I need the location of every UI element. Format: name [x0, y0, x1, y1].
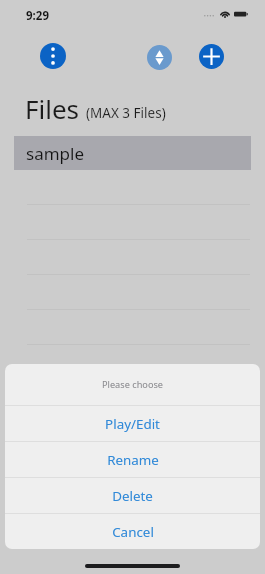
staticText: Files	[25, 91, 80, 126]
staticText: sample	[26, 142, 85, 165]
staticText: (MAX 3 Files)	[86, 104, 166, 122]
button[interactable]: Sort	[147, 45, 172, 70]
button[interactable]: Add file	[199, 44, 224, 69]
button[interactable]: Rename	[5, 442, 260, 477]
button[interactable]: Delete	[5, 478, 260, 513]
staticText: Rename	[107, 451, 159, 469]
staticText: Play/Edit	[105, 415, 160, 433]
button[interactable]: More options	[40, 43, 66, 69]
staticText: Delete	[112, 487, 153, 505]
staticText: Please choose	[102, 378, 164, 391]
staticText: 9:29	[26, 8, 49, 24]
button[interactable]: Play/Edit	[5, 406, 260, 441]
staticText: Cancel	[112, 523, 154, 541]
button[interactable]: Cancel	[5, 514, 260, 549]
button[interactable]: sample	[14, 136, 251, 170]
